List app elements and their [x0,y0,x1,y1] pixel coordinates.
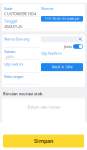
staticText: Simpan [34,137,53,145]
staticText: Tanggal [4,18,17,24]
button[interactable]: Pilih Nomor Berpasangan [41,16,83,22]
staticText: Belum ada rincian [27,104,59,109]
staticText: Keterangan [4,74,23,79]
button[interactable]: Back [0,0,10,11]
staticText: Nama Barang [4,36,29,42]
staticText: - pilih - [4,54,15,59]
staticText: CUSTOMERCHD4 [4,11,36,16]
staticText: Nomor [41,6,54,11]
staticText: Rincian mutasi stok [3,91,42,96]
button[interactable]: Tambah ke Daftar [41,63,83,71]
staticText: Jenis [64,44,72,49]
staticText: Satuan [4,49,15,54]
staticText: Qty Konfirm [41,51,62,56]
staticText: Pilih Nomor Berpasangan [44,17,79,21]
button[interactable]: Simpan [3,134,84,147]
staticText: Qty saat ini [4,61,23,67]
staticText: Input Mutasi Stok [14,1,72,10]
staticText: 2024-01-25 [4,24,22,29]
staticText: Kode [4,6,12,11]
staticText: Tambah ke Daftar [51,65,72,69]
